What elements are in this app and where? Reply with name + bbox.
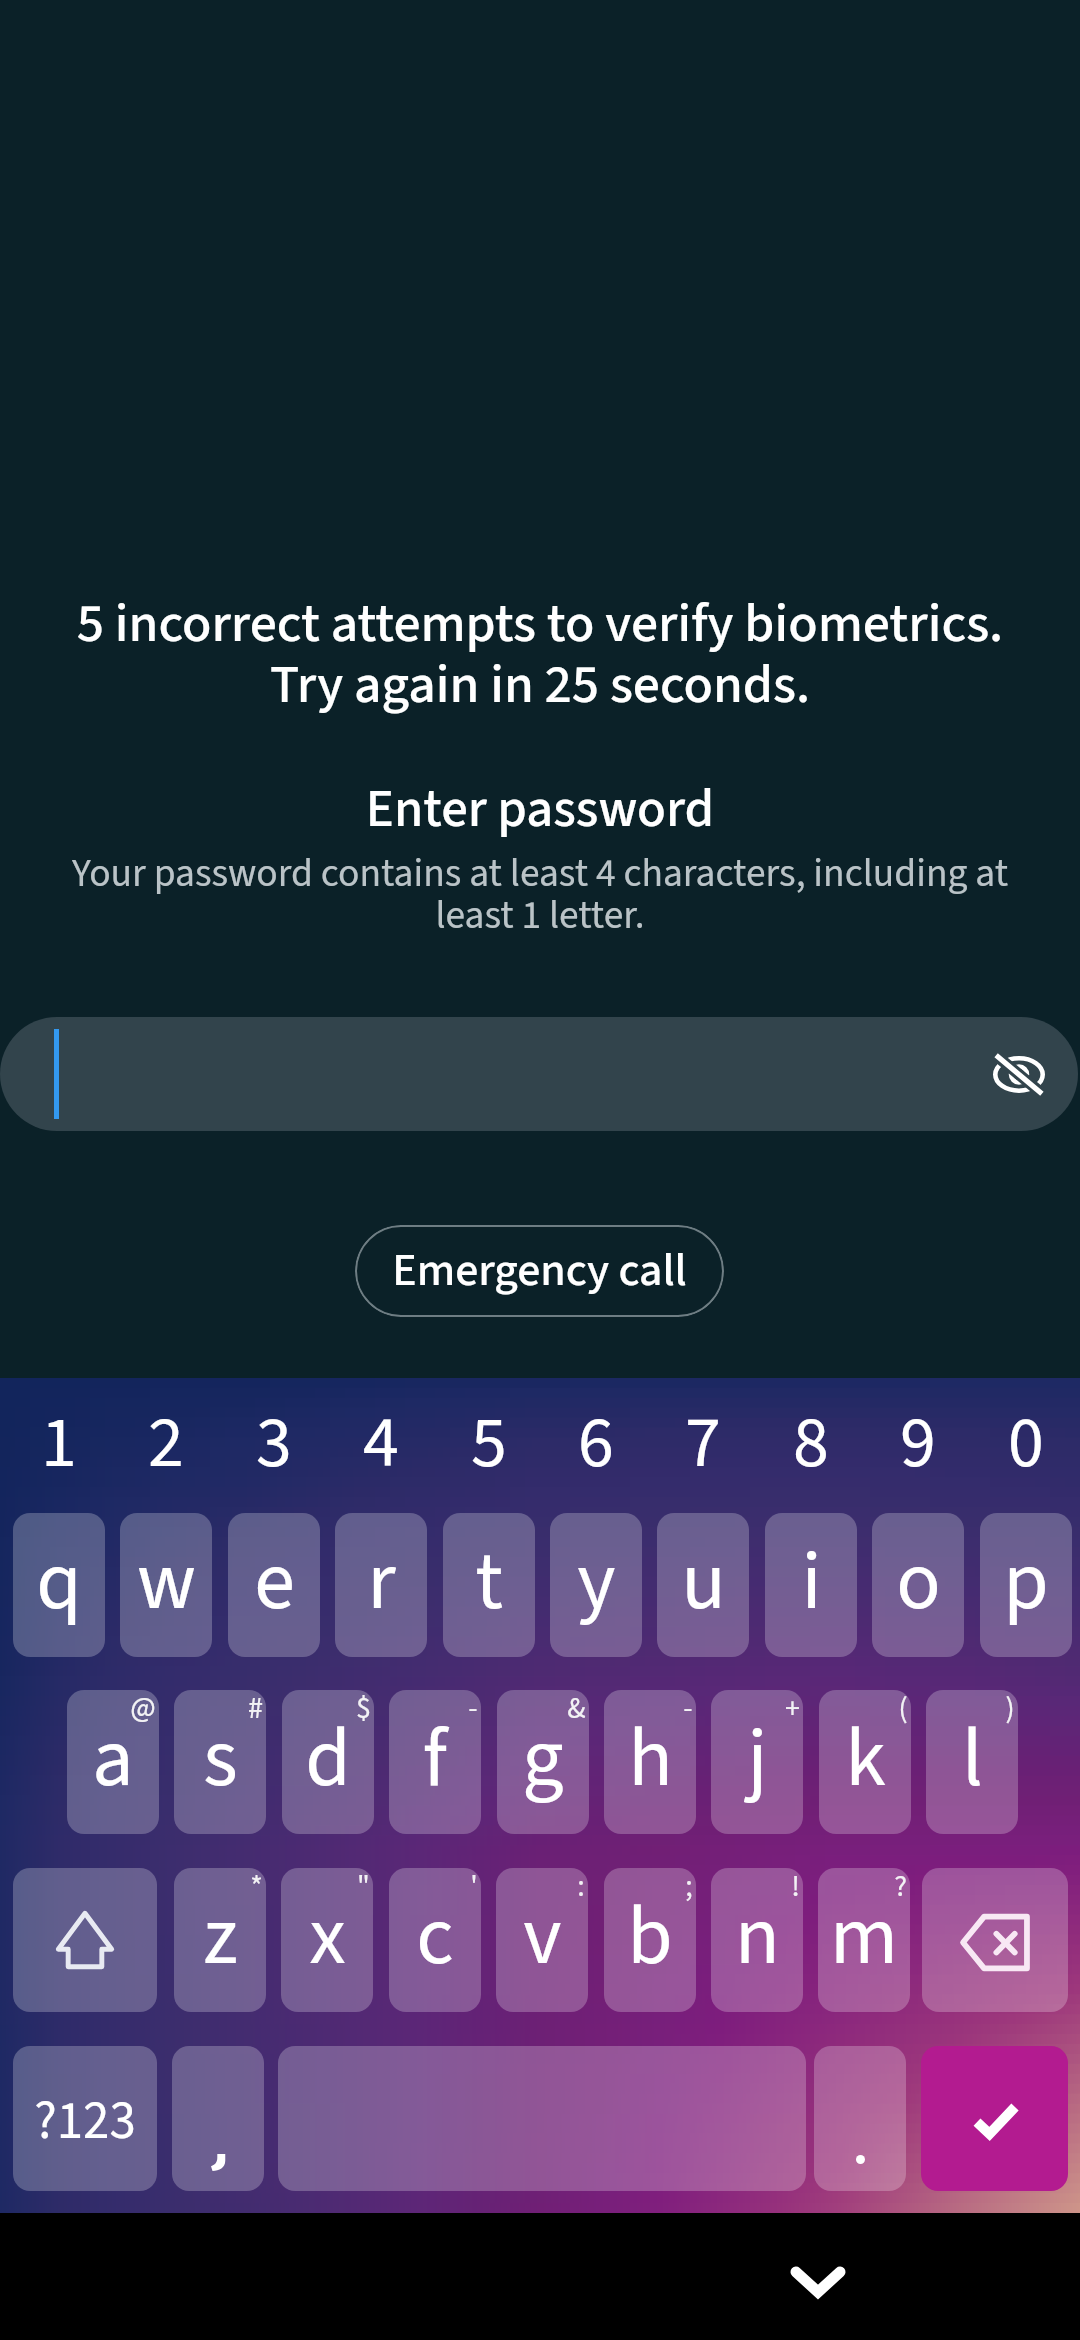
button[interactable]: q	[13, 1513, 105, 1657]
staticText: ;	[685, 1868, 693, 1908]
staticText: k	[845, 1701, 886, 1818]
button[interactable]: o	[872, 1513, 964, 1657]
button[interactable]: w	[120, 1513, 212, 1657]
staticText: v	[523, 1879, 562, 1996]
button[interactable]: h	[604, 1690, 696, 1834]
staticText: -	[468, 1690, 478, 1730]
staticText: z	[203, 1879, 238, 1996]
staticText: i	[801, 1524, 822, 1641]
staticText: h	[628, 1701, 673, 1818]
staticText: #	[248, 1690, 263, 1730]
staticText: s	[203, 1701, 238, 1818]
button[interactable]: t	[443, 1513, 535, 1657]
button[interactable]: Show password	[0, 1017, 1078, 1131]
staticText: w	[137, 1524, 196, 1641]
staticText: 5	[471, 1392, 507, 1495]
button[interactable]: Show password	[971, 1026, 1067, 1122]
button[interactable]: j	[711, 1690, 803, 1834]
staticText: 0	[1008, 1392, 1044, 1495]
button[interactable]: 3	[228, 1378, 320, 1508]
button[interactable]: d	[282, 1690, 374, 1834]
staticText: 7	[685, 1392, 721, 1495]
button[interactable]: a	[67, 1690, 159, 1834]
button[interactable]: v	[496, 1868, 588, 2012]
staticText: 3	[256, 1392, 292, 1495]
button[interactable]: y	[550, 1513, 642, 1657]
button[interactable]: 7	[657, 1378, 749, 1508]
button[interactable]: 2	[120, 1378, 212, 1508]
button[interactable]: 8	[765, 1378, 857, 1508]
button[interactable]: 5	[443, 1378, 535, 1508]
button[interactable]: Shift	[13, 1868, 157, 2012]
button[interactable]: i	[765, 1513, 857, 1657]
button[interactable]: u	[657, 1513, 749, 1657]
staticText: "	[357, 1868, 370, 1908]
button[interactable]: m	[818, 1868, 910, 2012]
staticText: q	[36, 1524, 82, 1641]
button[interactable]: Enter	[921, 2046, 1068, 2191]
staticText: r	[367, 1524, 396, 1641]
button[interactable]: 0	[980, 1378, 1072, 1508]
staticText: a	[92, 1701, 134, 1818]
button[interactable]: g	[497, 1690, 589, 1834]
button[interactable]: r	[335, 1513, 427, 1657]
button[interactable]: k	[819, 1690, 911, 1834]
button[interactable]: b	[604, 1868, 696, 2012]
button[interactable]: 6	[550, 1378, 642, 1508]
staticText: f	[423, 1701, 447, 1818]
staticText: -	[683, 1690, 693, 1730]
staticText: p	[1003, 1524, 1049, 1641]
staticText: Your password contains at least 4 charac…	[0, 846, 1080, 944]
button[interactable]: n	[711, 1868, 803, 2012]
staticText: 5 incorrect attempts to verify biometric…	[0, 586, 1080, 723]
button[interactable]: Emergency call	[355, 1225, 724, 1317]
staticText: o	[896, 1524, 941, 1641]
button[interactable]: c	[389, 1868, 481, 2012]
staticText: '	[470, 1868, 478, 1908]
staticText: l	[962, 1701, 983, 1818]
staticText: 1	[41, 1392, 77, 1495]
staticText: 4	[363, 1392, 399, 1495]
staticText: !	[791, 1868, 800, 1908]
staticText: n	[735, 1879, 780, 1996]
button[interactable]: z	[174, 1868, 266, 2012]
staticText: Emergency call	[392, 1238, 687, 1304]
staticText: t	[475, 1524, 503, 1641]
button[interactable]: 9	[872, 1378, 964, 1508]
button[interactable]: ?123	[13, 2046, 157, 2191]
button[interactable]: Space	[278, 2046, 806, 2191]
button[interactable]: p	[980, 1513, 1072, 1657]
button[interactable]	[814, 2046, 906, 2191]
staticText: b	[627, 1879, 673, 1996]
staticText: @	[130, 1690, 156, 1730]
staticText: 8	[793, 1392, 829, 1495]
staticText: ?123	[34, 2084, 136, 2159]
button[interactable]: 1	[13, 1378, 105, 1508]
button[interactable]: Hide keyboard	[774, 2237, 862, 2325]
staticText: 9	[900, 1392, 936, 1495]
staticText: c	[416, 1879, 454, 1996]
staticText: ?	[894, 1868, 907, 1908]
staticText: &	[567, 1690, 586, 1730]
staticText: y	[577, 1524, 616, 1641]
staticText: 6	[578, 1392, 614, 1495]
button[interactable]: 4	[335, 1378, 427, 1508]
staticText: Enter password	[0, 772, 1080, 847]
staticText: (	[898, 1690, 908, 1730]
button[interactable]: e	[228, 1513, 320, 1657]
staticText: 2	[148, 1392, 184, 1495]
button[interactable]: l	[926, 1690, 1018, 1834]
staticText: *	[250, 1868, 263, 1908]
staticText: x	[309, 1879, 346, 1996]
staticText: )	[1005, 1690, 1015, 1730]
button[interactable]: Backspace	[922, 1868, 1068, 2012]
staticText: u	[681, 1524, 726, 1641]
staticText: e	[254, 1524, 295, 1641]
staticText: m	[830, 1879, 898, 1996]
button[interactable]: x	[281, 1868, 373, 2012]
staticText: +	[785, 1690, 800, 1730]
button[interactable]	[172, 2046, 264, 2191]
button[interactable]: s	[174, 1690, 266, 1834]
button[interactable]: f	[389, 1690, 481, 1834]
staticText: j	[747, 1701, 768, 1818]
